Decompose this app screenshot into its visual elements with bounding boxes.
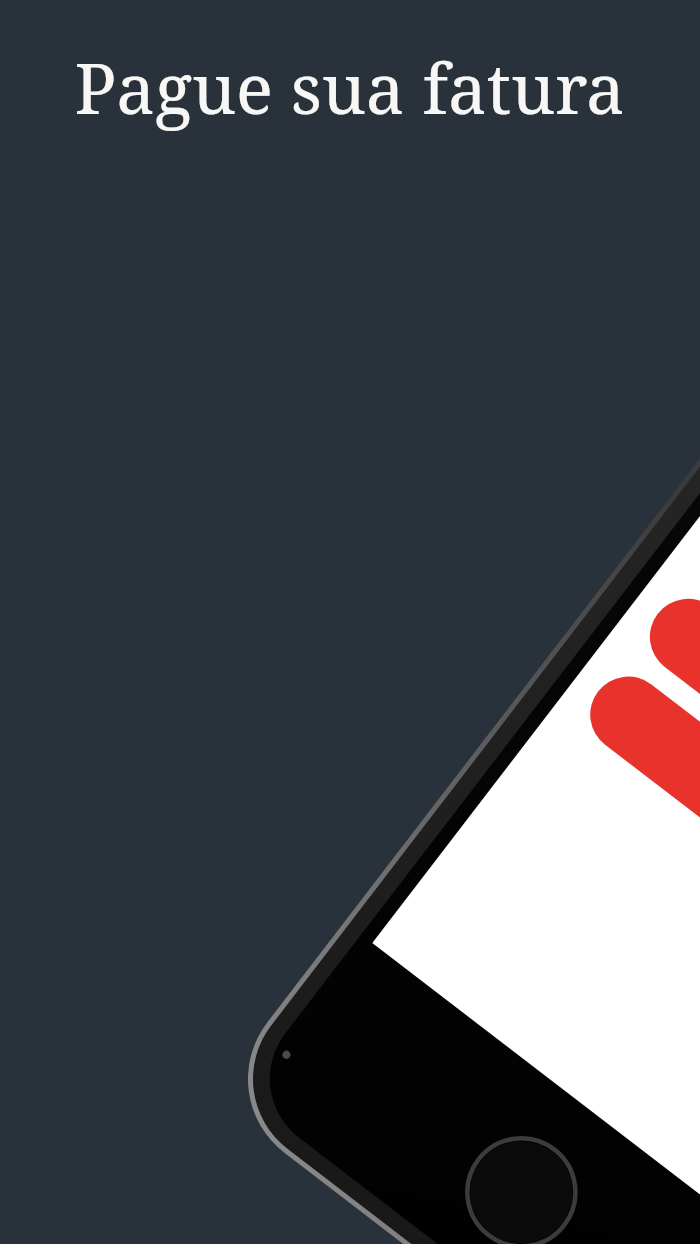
button[interactable]: Pague sua fatura [0,0,700,1244]
